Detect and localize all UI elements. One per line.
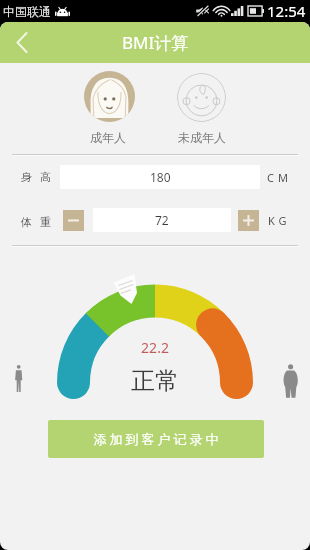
staticText: 成年人 [90,130,126,145]
button[interactable]: 72 [93,208,231,232]
staticText: KG [268,213,291,228]
staticText: BMI计算 [122,31,189,54]
button[interactable]: 添加到客户记录中 [48,420,264,458]
staticText: 添加到客户记录中 [92,431,220,447]
staticText: 72 [155,212,169,228]
staticText: 12:54 [267,1,306,21]
staticText: 180 [150,169,171,185]
staticText: CM [267,170,292,185]
button[interactable]: 180 [60,165,260,189]
button[interactable]: Back [0,22,44,63]
staticText: 中国联通 [3,4,51,19]
staticText: 身高 [17,170,55,184]
staticText: 未成年人 [178,130,226,145]
button[interactable]: Increase weight [238,210,259,231]
staticText: 22.2 [0,338,310,357]
button[interactable] [177,73,226,122]
staticText: 体重 [17,215,55,229]
button[interactable] [84,71,135,122]
staticText: 正常 [0,366,310,396]
button[interactable]: Decrease weight [63,210,84,231]
